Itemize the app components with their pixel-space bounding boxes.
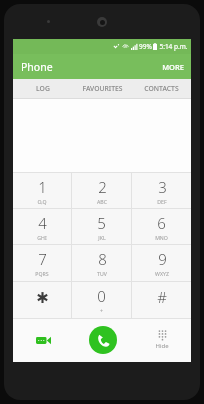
button[interactable]: 4 (13, 209, 71, 244)
staticText: LOG (36, 84, 50, 93)
staticText: FAVOURITES (82, 84, 123, 93)
button[interactable]: Video call (13, 318, 73, 362)
button[interactable]: 9 (132, 245, 191, 281)
staticText: JKL (98, 234, 106, 241)
staticText: GHI (37, 234, 47, 241)
button[interactable]: Call (73, 318, 132, 362)
button[interactable]: ✱ (13, 282, 71, 318)
staticText: WXYZ (155, 270, 169, 277)
button[interactable]: FAVOURITES (73, 79, 132, 98)
button[interactable]: MORE (155, 58, 191, 76)
staticText: Hide (155, 342, 169, 350)
staticText: PQRS (35, 270, 49, 277)
staticText: DEF (157, 198, 167, 205)
staticText: 4 (38, 213, 47, 233)
button[interactable]: LOG (13, 79, 73, 98)
button[interactable]: 1 (13, 173, 71, 208)
staticText: ✱ (36, 289, 49, 306)
staticText: 6 (157, 213, 166, 233)
staticText: TUV (97, 270, 107, 277)
staticText: 9 (158, 249, 167, 269)
staticText: 0 (97, 286, 106, 306)
staticText: CONTACTS (144, 84, 179, 93)
staticText: O,Q (37, 198, 47, 205)
staticText: Phone (21, 60, 53, 74)
button[interactable]: 2 (72, 173, 131, 208)
staticText: + (100, 307, 103, 314)
button[interactable]: 6 (132, 209, 191, 244)
staticText: 1 (38, 177, 47, 197)
button[interactable]: Hide dialpad (132, 318, 191, 362)
staticText: 5 (97, 213, 106, 233)
staticText: 2 (98, 177, 107, 197)
staticText: 7 (38, 249, 47, 269)
button[interactable]: 7 (13, 245, 71, 281)
staticText: # (157, 287, 167, 307)
button[interactable]: 5 (72, 209, 131, 244)
staticText: MNO (155, 234, 168, 241)
button[interactable]: CONTACTS (132, 79, 191, 98)
staticText: ABC (97, 198, 107, 205)
staticText: MORE (162, 62, 184, 72)
staticText: 5:14 p.m. (159, 42, 188, 51)
button[interactable]: # (132, 282, 191, 318)
staticText: 99% (139, 42, 152, 51)
button[interactable]: 3 (132, 173, 191, 208)
staticText: 3 (158, 177, 167, 197)
button[interactable]: 8 (72, 245, 131, 281)
button[interactable]: 0 (72, 282, 131, 318)
staticText: 8 (98, 249, 107, 269)
